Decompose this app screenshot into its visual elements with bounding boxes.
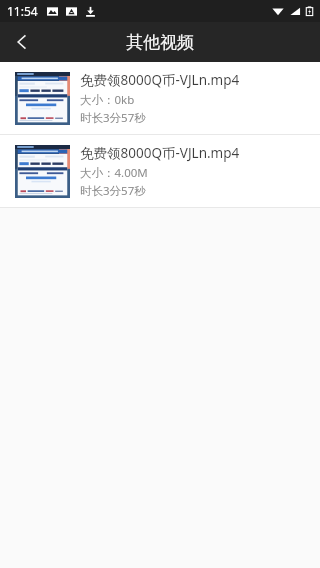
staticText: 时长3分57秒 — [80, 110, 146, 126]
button[interactable]: Back — [0, 22, 44, 62]
staticText: 免费领8000Q币-VJLn.mp4 — [80, 71, 240, 89]
staticText: 大小：4.00M — [80, 165, 148, 181]
staticText: 11:54 — [7, 3, 38, 19]
staticText: 时长3分57秒 — [80, 183, 146, 199]
staticText: 其他视频 — [126, 32, 194, 53]
button[interactable]: 免费领8000Q币-VJLn.mp4 — [0, 135, 320, 207]
staticText: 免费领8000Q币-VJLn.mp4 — [80, 144, 240, 162]
staticText: 大小：0kb — [80, 92, 135, 108]
button[interactable]: 免费领8000Q币-VJLn.mp4 — [0, 62, 320, 134]
